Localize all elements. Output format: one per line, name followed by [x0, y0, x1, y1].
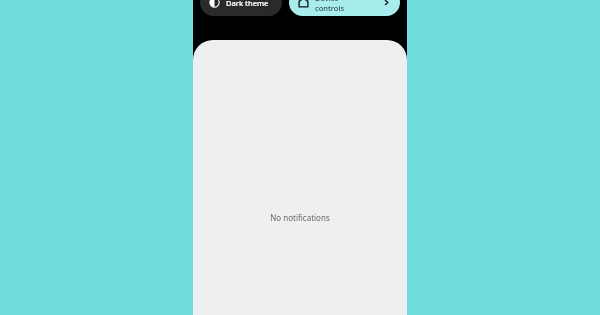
- staticText: No notifications: [193, 212, 407, 223]
- staticText: Device controls: [315, 0, 348, 13]
- button[interactable]: Dark theme: [200, 0, 282, 16]
- button[interactable]: Device controls: [289, 0, 400, 16]
- staticText: Dark theme: [226, 0, 269, 8]
